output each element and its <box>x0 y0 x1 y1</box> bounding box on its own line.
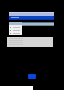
button[interactable] <box>9 29 22 32</box>
button[interactable] <box>7 37 53 47</box>
button[interactable] <box>9 32 22 35</box>
button[interactable] <box>9 26 22 29</box>
button[interactable] <box>9 16 54 19</box>
button[interactable]: Action <box>28 74 36 79</box>
